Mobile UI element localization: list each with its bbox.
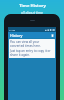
button[interactable]: Clear history [50,33,55,38]
staticText: 11:30 [9,28,16,31]
staticText: Time History [19,3,46,9]
staticText: You can view all your converted times he… [10,40,54,48]
staticText: History [10,33,23,38]
button[interactable]: You can view all your converted times he… [9,39,55,58]
staticText: Just tap an entry to copy it or share it… [10,49,54,57]
staticText: all about time [21,10,43,15]
